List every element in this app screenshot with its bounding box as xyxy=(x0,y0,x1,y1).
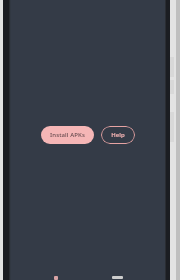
staticText: Install APKs xyxy=(50,131,85,139)
staticText: Help xyxy=(111,131,125,139)
button[interactable]: Apps tab xyxy=(54,276,58,280)
button[interactable]: Settings tab xyxy=(112,276,123,279)
button[interactable]: Help xyxy=(101,126,135,144)
button[interactable]: Install APKs xyxy=(41,126,94,144)
